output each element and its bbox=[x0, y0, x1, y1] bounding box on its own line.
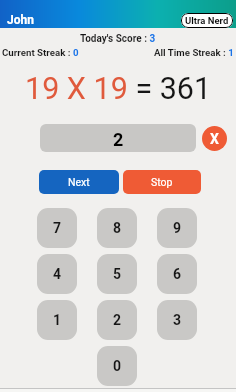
button[interactable]: 9 bbox=[157, 208, 197, 248]
staticText: 2 bbox=[113, 312, 122, 328]
button[interactable]: Next bbox=[39, 170, 119, 194]
button[interactable]: 4 bbox=[37, 254, 77, 294]
button[interactable]: X bbox=[202, 126, 227, 151]
button[interactable]: 2 bbox=[40, 124, 196, 152]
button[interactable]: 8 bbox=[97, 208, 137, 248]
button[interactable]: 6 bbox=[157, 254, 197, 294]
button[interactable]: 7 bbox=[37, 208, 77, 248]
button[interactable]: 3 bbox=[157, 300, 197, 340]
staticText: 1 bbox=[53, 312, 62, 328]
staticText: All Time Streak : 1 bbox=[154, 47, 234, 58]
button[interactable]: 5 bbox=[97, 254, 137, 294]
button[interactable]: 0 bbox=[97, 346, 137, 386]
staticText: 5 bbox=[113, 266, 122, 282]
staticText: 7 bbox=[53, 220, 62, 236]
staticText: 6 bbox=[173, 266, 182, 282]
staticText: Next bbox=[68, 176, 90, 188]
staticText: 9 bbox=[173, 220, 182, 236]
staticText: John bbox=[7, 13, 34, 27]
staticText: 2 bbox=[113, 129, 124, 150]
staticText: 3 bbox=[173, 312, 182, 328]
staticText: Stop bbox=[151, 176, 173, 188]
staticText: 4 bbox=[53, 266, 62, 282]
staticText: 0 bbox=[113, 358, 122, 374]
button[interactable]: Ultra Nerd bbox=[181, 13, 233, 28]
staticText: Ultra Nerd bbox=[185, 15, 229, 26]
staticText: 8 bbox=[113, 220, 122, 236]
staticText: Current Streak : 0 bbox=[2, 47, 79, 58]
staticText: 19 X 19 = 361 bbox=[25, 71, 212, 107]
staticText: Today's Score : 3 bbox=[80, 33, 156, 45]
staticText: X bbox=[210, 131, 219, 147]
button[interactable]: 2 bbox=[97, 300, 137, 340]
button[interactable]: Stop bbox=[123, 170, 201, 194]
button[interactable]: 1 bbox=[37, 300, 77, 340]
